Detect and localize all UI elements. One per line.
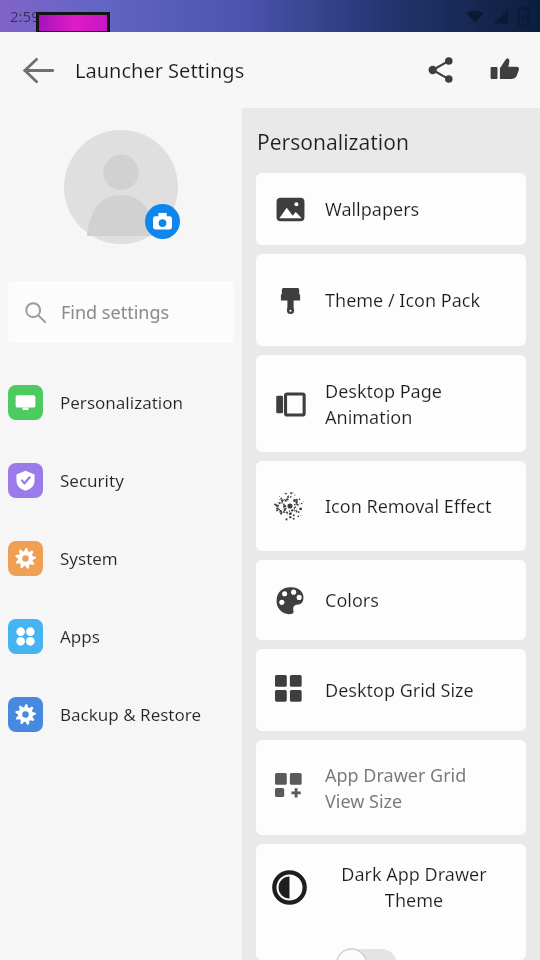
- staticText: Apps: [60, 625, 100, 648]
- button[interactable]: App Drawer Grid View Size: [256, 740, 526, 835]
- button[interactable]: Change profile photo: [145, 204, 180, 239]
- button[interactable]: Wallpapers: [256, 173, 526, 245]
- staticText: Security: [60, 469, 124, 492]
- button[interactable]: System: [0, 519, 242, 597]
- staticText: 2:59: [10, 6, 40, 26]
- button[interactable]: Colors: [256, 560, 526, 640]
- staticText: Personalization: [257, 128, 409, 157]
- button[interactable]: Desktop Page Animation: [256, 355, 526, 452]
- staticText: Desktop Grid Size: [325, 678, 474, 703]
- button[interactable]: Security: [0, 441, 242, 519]
- staticText: Dark App Drawer Theme: [320, 862, 508, 913]
- button[interactable]: Back: [12, 44, 64, 96]
- staticText: Wallpapers: [325, 197, 420, 222]
- staticText: Backup & Restore: [60, 703, 202, 726]
- staticText: Desktop Page Animation: [325, 379, 442, 429]
- staticText: Launcher Settings: [75, 57, 245, 84]
- button[interactable]: Personalization: [0, 363, 242, 441]
- staticText: System: [60, 547, 118, 570]
- staticText: Colors: [325, 588, 379, 613]
- button[interactable]: Find settings: [8, 281, 234, 343]
- button[interactable]: Theme / Icon Pack: [256, 254, 526, 346]
- button[interactable]: Dark App Drawer Theme: [256, 844, 526, 960]
- button[interactable]: Desktop Grid Size: [256, 649, 526, 731]
- button[interactable]: Icon Removal Effect: [256, 461, 526, 551]
- button[interactable]: Dark App Drawer Theme toggle: [335, 948, 397, 960]
- button[interactable]: Rate this app: [480, 45, 530, 95]
- button[interactable]: Share: [416, 45, 466, 95]
- staticText: Personalization: [60, 391, 183, 414]
- staticText: Theme / Icon Pack: [325, 288, 480, 313]
- button[interactable]: Backup & Restore: [0, 675, 242, 753]
- staticText: Find settings: [61, 300, 170, 325]
- staticText: Icon Removal Effect: [325, 494, 492, 519]
- staticText: App Drawer Grid View Size: [325, 763, 467, 813]
- button[interactable]: Apps: [0, 597, 242, 675]
